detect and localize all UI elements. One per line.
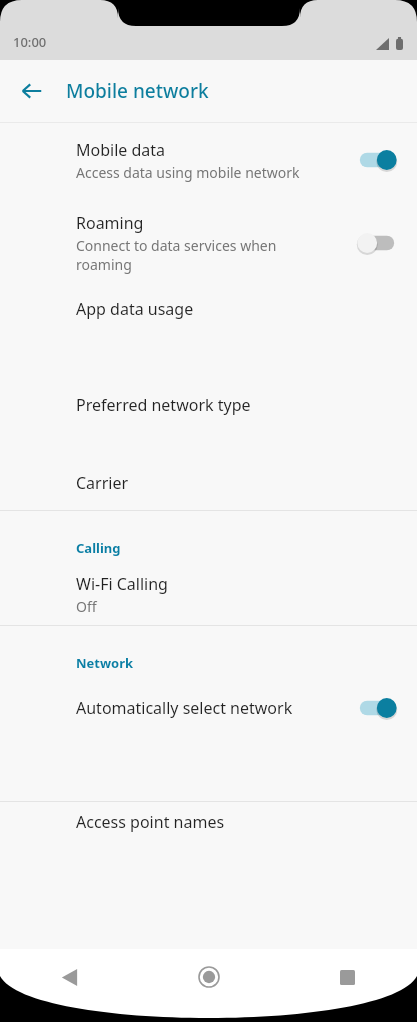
button[interactable]: Mobile data	[0, 123, 417, 197]
button[interactable]: Recents	[278, 949, 417, 1005]
staticText: Roaming	[76, 212, 144, 234]
button[interactable]: App data usage	[0, 289, 417, 385]
button[interactable]: Back	[0, 949, 139, 1005]
button[interactable]: Toggle	[355, 147, 399, 173]
button[interactable]: Carrier	[0, 463, 417, 510]
staticText: Connect to data services when roaming	[76, 236, 277, 274]
staticText: Access point names	[76, 811, 225, 833]
staticText: Mobile network	[66, 78, 209, 104]
staticText: Wi-Fi Calling	[76, 573, 168, 595]
staticText: Calling	[76, 539, 121, 557]
staticText: Carrier	[76, 472, 129, 494]
staticText: Mobile data	[76, 139, 166, 161]
staticText: Preferred network type	[76, 394, 251, 416]
button[interactable]: Wi-Fi Calling	[0, 563, 417, 625]
button[interactable]: Preferred network type	[0, 385, 417, 463]
button[interactable]: Roaming	[0, 197, 417, 289]
button[interactable]: Toggle	[355, 230, 399, 256]
staticText: Off	[76, 597, 97, 616]
button[interactable]: Automatically select network	[0, 678, 417, 738]
staticText: Automatically select network	[76, 697, 293, 719]
staticText: 10:00	[13, 33, 47, 51]
button[interactable]: Home	[139, 949, 278, 1005]
button[interactable]: Access point names	[0, 802, 417, 852]
staticText: App data usage	[76, 298, 194, 320]
staticText: Access data using mobile network	[76, 163, 300, 182]
button[interactable]: Toggle	[355, 695, 399, 721]
staticText: Network	[76, 654, 134, 672]
button[interactable]: Back	[10, 69, 54, 113]
